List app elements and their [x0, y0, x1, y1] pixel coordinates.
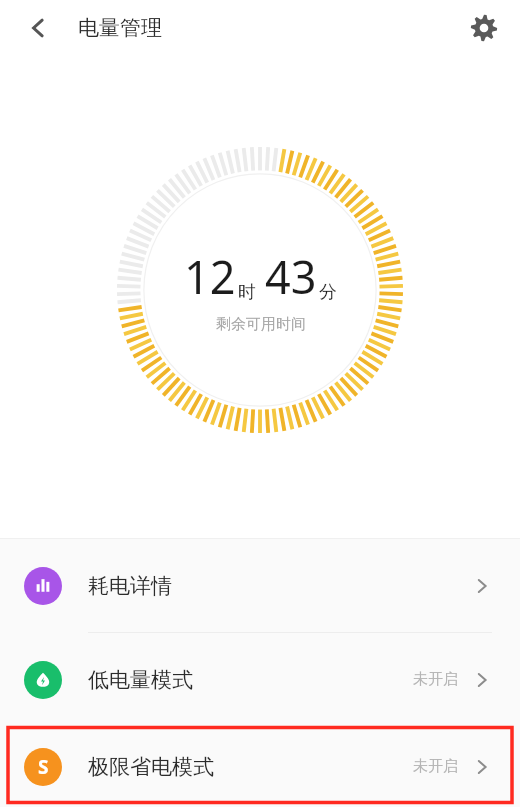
button[interactable]: 低电量模式: [0, 633, 520, 726]
staticText: 剩余可用时间: [216, 315, 306, 334]
staticText: 电量管理: [78, 15, 162, 41]
staticText: 分: [319, 281, 337, 304]
button[interactable]: 耗电详情: [0, 539, 520, 632]
staticText: 时: [238, 281, 256, 304]
staticText: 未开启: [413, 670, 458, 689]
staticText: S: [38, 754, 49, 780]
staticText: 低电量模式: [88, 667, 193, 693]
button[interactable]: Back: [14, 4, 62, 52]
button[interactable]: S: [0, 726, 520, 807]
staticText: 耗电详情: [88, 573, 172, 599]
button[interactable]: Settings: [460, 4, 508, 52]
staticText: 43: [265, 246, 317, 307]
staticText: 极限省电模式: [88, 754, 214, 780]
staticText: 未开启: [413, 757, 458, 776]
staticText: 12: [184, 246, 236, 307]
